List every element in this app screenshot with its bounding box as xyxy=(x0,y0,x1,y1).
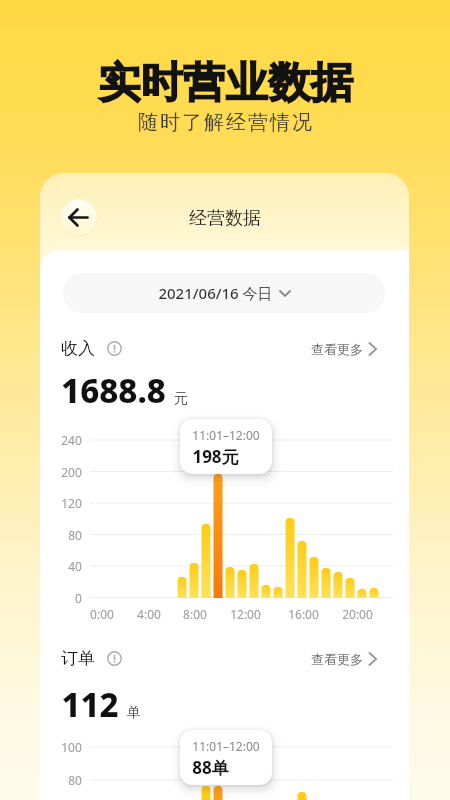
staticText: 8:00 xyxy=(183,606,207,622)
staticText: 100 xyxy=(61,739,82,755)
staticText: 240 xyxy=(61,432,82,448)
button[interactable]: 查看更多 xyxy=(311,341,377,357)
staticText: 2021/06/16 今日 xyxy=(158,283,273,303)
staticText: 120 xyxy=(61,495,82,511)
staticText: 实时营业数据 xyxy=(98,57,353,110)
staticText: 88单 xyxy=(192,756,229,779)
button[interactable]: 查看更多 xyxy=(311,651,377,667)
staticText: 198元 xyxy=(192,445,239,468)
staticText: 随时了解经营情况 xyxy=(137,110,313,135)
staticText: 11:01–12:00 xyxy=(192,427,260,443)
staticText: 查看更多 xyxy=(311,651,363,667)
staticText: 经营数据 xyxy=(189,207,261,230)
staticText: 收入 xyxy=(61,338,95,359)
staticText: 0:00 xyxy=(90,606,114,622)
staticText: 订单 xyxy=(61,648,95,669)
staticText: 12:00 xyxy=(230,606,261,622)
staticText: 元 xyxy=(174,390,188,408)
button[interactable]: 2021/06/16 今日 xyxy=(63,273,385,313)
staticText: 查看更多 xyxy=(311,341,363,357)
button[interactable] xyxy=(60,199,97,236)
staticText: 80 xyxy=(68,772,82,788)
staticText: 11:01–12:00 xyxy=(192,738,260,754)
staticText: 80 xyxy=(68,527,82,543)
staticText: 200 xyxy=(61,464,82,480)
staticText: 20:00 xyxy=(342,606,373,622)
staticText: 单 xyxy=(127,704,141,722)
staticText: 0 xyxy=(75,590,82,606)
staticText: 16:00 xyxy=(288,606,319,622)
staticText: 4:00 xyxy=(137,606,161,622)
staticText: 112 xyxy=(61,682,119,727)
staticText: 1688.8 xyxy=(61,368,166,413)
staticText: 40 xyxy=(68,558,82,574)
